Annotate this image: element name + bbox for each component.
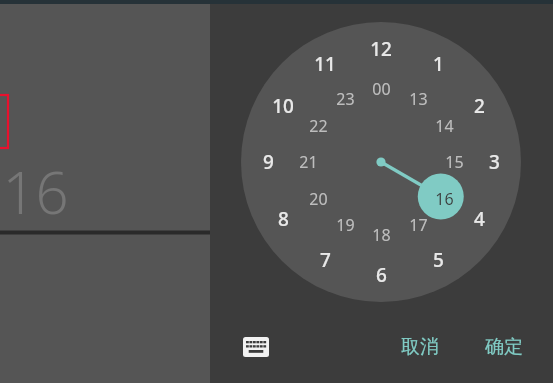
button[interactable]: 1 [422,51,454,77]
staticText: 00 [372,78,391,100]
button[interactable]: 5 [422,247,454,273]
staticText: 16 [2,152,69,231]
staticText: 23 [336,88,355,110]
button[interactable]: 14 [429,115,459,137]
button[interactable]: 12 [365,36,397,62]
button[interactable]: 15 [439,151,469,173]
button[interactable]: 18 [366,224,396,246]
staticText: 19 [336,214,355,236]
staticText: 2 [474,93,485,119]
staticText: 17 [409,214,428,236]
button[interactable]: Switch to keyboard input [236,327,276,367]
button[interactable]: 21 [293,151,323,173]
button[interactable]: 取消 [387,327,453,367]
button[interactable]: 11 [309,51,341,77]
staticText: 7 [320,247,331,273]
staticText: 21 [299,151,318,173]
button[interactable]: 3 [478,149,510,175]
staticText: 20 [309,188,328,210]
button[interactable]: 4 [463,206,495,232]
staticText: 15 [445,151,464,173]
button[interactable]: 10 [267,93,299,119]
button[interactable]: 16 [0,152,71,231]
button[interactable]: 19 [330,214,360,236]
button[interactable]: 22 [303,115,333,137]
staticText: 5 [433,247,444,273]
button[interactable]: 9 [252,149,284,175]
button[interactable]: 20 [303,188,333,210]
staticText: 确定 [485,335,523,359]
button[interactable]: 17 [403,214,433,236]
staticText: 12 [370,36,392,62]
button[interactable]: 23 [330,88,360,110]
staticText: 10 [272,93,294,119]
staticText: 8 [278,206,289,232]
staticText: 4 [474,206,485,232]
staticText: 9 [263,149,274,175]
staticText: 14 [435,115,454,137]
button[interactable]: 13 [403,88,433,110]
staticText: 22 [309,115,328,137]
staticText: 16 [435,188,454,210]
button[interactable]: 确定 [471,327,537,367]
button[interactable]: 16 [429,188,459,210]
staticText: 1 [433,51,444,77]
button[interactable]: 6 [365,262,397,288]
button[interactable]: 7 [309,247,341,273]
staticText: 6 [376,262,387,288]
staticText: 取消 [401,335,439,359]
button[interactable]: 2 [463,93,495,119]
staticText: 11 [314,51,336,77]
button[interactable]: 00 [366,78,396,100]
staticText: 3 [489,149,500,175]
button[interactable]: 8 [267,206,299,232]
staticText: 13 [409,88,428,110]
staticText: 18 [372,224,391,246]
